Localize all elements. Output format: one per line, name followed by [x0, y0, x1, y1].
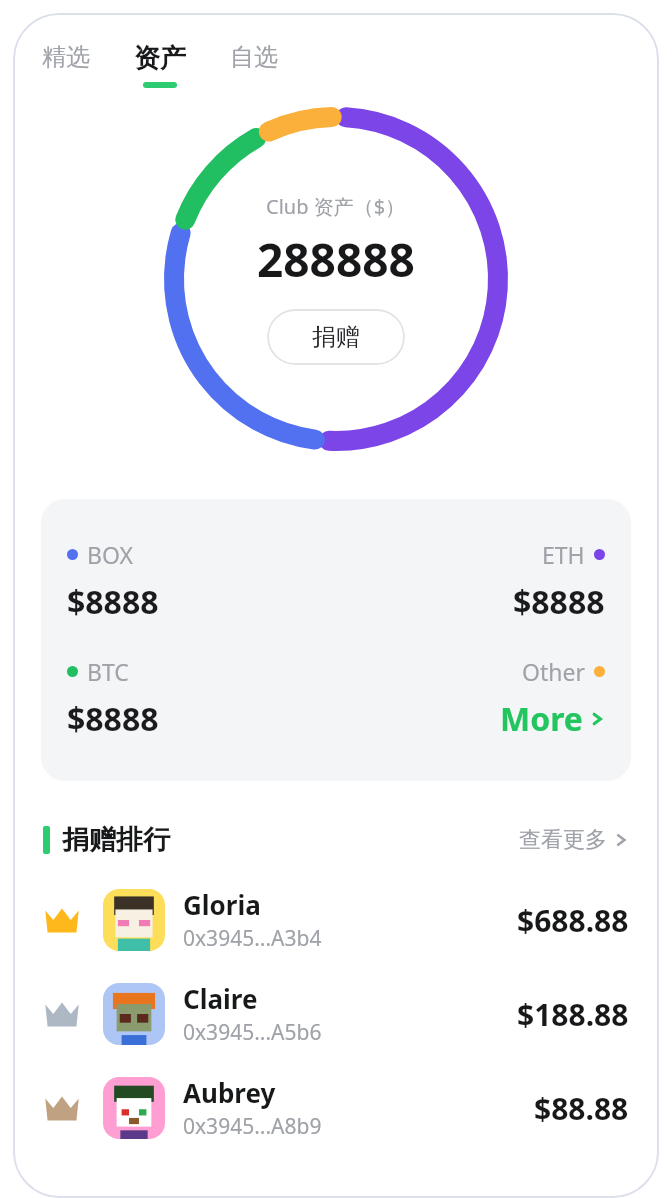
staticText: 288888	[257, 228, 415, 291]
staticText: $8888	[513, 580, 605, 624]
staticText: 捐赠排行	[62, 823, 170, 857]
staticText: $8888	[67, 580, 159, 624]
staticText: 0x3945...A3b4	[183, 924, 322, 953]
staticText: ETH	[542, 539, 585, 570]
button[interactable]: Gloria	[13, 873, 659, 967]
staticText: 0x3945...A5b6	[183, 1018, 322, 1047]
button[interactable]: 捐赠	[267, 309, 405, 365]
staticText: More	[500, 697, 583, 741]
button[interactable]: 资产	[132, 42, 188, 88]
staticText: $88.88	[534, 1088, 629, 1129]
button[interactable]: 查看更多	[519, 826, 629, 854]
staticText: $8888	[67, 697, 159, 741]
staticText: Club 资产（$）	[266, 193, 406, 220]
staticText: Other	[522, 656, 585, 687]
staticText: BOX	[87, 539, 133, 570]
staticText: 查看更多	[519, 826, 607, 854]
staticText: 自选	[230, 42, 278, 72]
staticText: Claire	[183, 981, 258, 1016]
staticText: Gloria	[183, 887, 261, 922]
button[interactable]: Claire	[13, 967, 659, 1061]
button[interactable]: More	[500, 697, 605, 741]
staticText: Aubrey	[183, 1075, 276, 1110]
staticText: $188.88	[517, 994, 629, 1035]
staticText: BTC	[87, 656, 129, 687]
staticText: 精选	[42, 42, 90, 72]
staticText: 0x3945...A8b9	[183, 1112, 322, 1141]
staticText: 资产	[134, 42, 186, 75]
staticText: $688.88	[517, 900, 629, 941]
button[interactable]: 自选	[228, 42, 280, 85]
button[interactable]: 精选	[40, 42, 92, 85]
button[interactable]: BOX	[41, 499, 631, 781]
button[interactable]: Aubrey	[13, 1061, 659, 1155]
staticText: 捐赠	[312, 322, 360, 352]
